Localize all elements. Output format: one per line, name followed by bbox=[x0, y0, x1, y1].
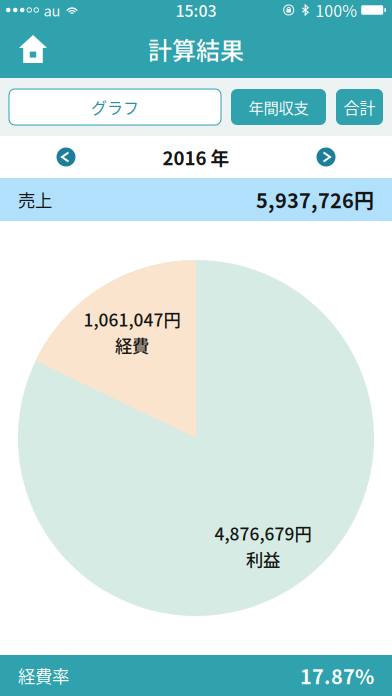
button[interactable]: 合計 bbox=[336, 89, 383, 125]
staticText: 利益 bbox=[246, 546, 280, 572]
button[interactable]: グラフ bbox=[9, 89, 221, 125]
button[interactable]: Previous year bbox=[44, 136, 88, 178]
staticText: 合計 bbox=[343, 95, 375, 119]
staticText: 売上 bbox=[18, 187, 52, 212]
staticText: 15:03 bbox=[175, 0, 216, 22]
staticText: au bbox=[43, 0, 60, 21]
staticText: 経費 bbox=[115, 332, 149, 358]
staticText: 4,876,679円 bbox=[214, 520, 311, 545]
button[interactable]: Next year bbox=[304, 136, 348, 178]
staticText: 100% bbox=[315, 0, 357, 22]
staticText: 17.87% bbox=[300, 661, 374, 690]
staticText: 1,061,047円 bbox=[83, 306, 180, 331]
staticText: 2016 年 bbox=[162, 143, 229, 170]
staticText: 5,937,726円 bbox=[256, 185, 374, 214]
staticText: 計算結果 bbox=[148, 32, 244, 66]
staticText: グラフ bbox=[91, 95, 139, 119]
staticText: 年間収支 bbox=[248, 96, 308, 118]
staticText: 経費率 bbox=[18, 663, 69, 688]
button[interactable]: 年間収支 bbox=[231, 89, 326, 125]
button[interactable]: Home bbox=[0, 20, 66, 78]
